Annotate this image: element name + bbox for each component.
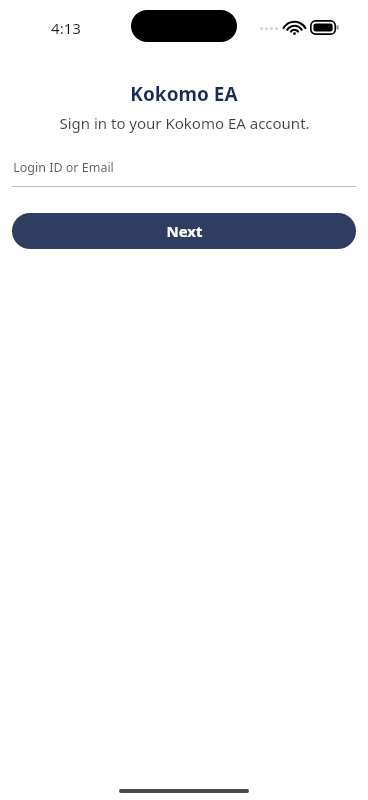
staticText: Kokomo EA <box>130 81 238 107</box>
staticText: Login ID or Email <box>13 159 114 176</box>
staticText: 4:13 <box>51 18 81 38</box>
button[interactable]: Next <box>12 213 356 249</box>
other: Home indicator <box>119 789 249 793</box>
staticText: Sign in to your Kokomo EA account. <box>59 113 310 133</box>
staticText: Next <box>166 221 203 241</box>
button[interactable]: Login ID or Email <box>0 148 368 187</box>
